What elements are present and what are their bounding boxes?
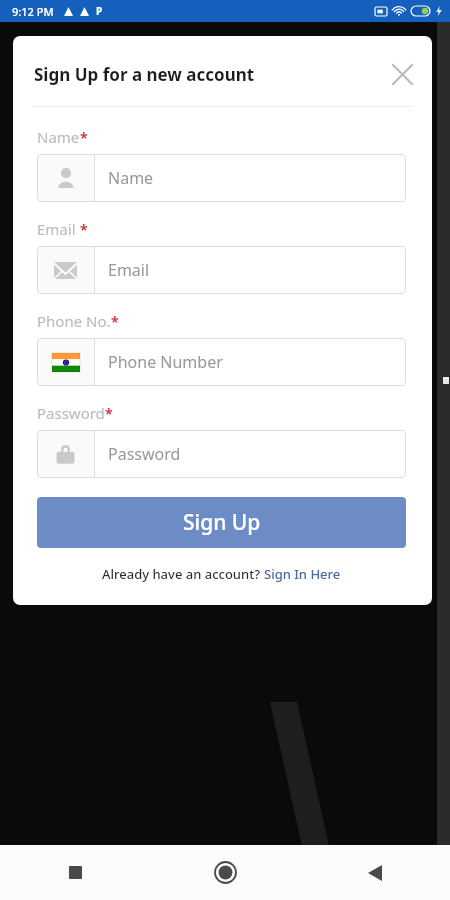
staticText: Phone No. <box>37 311 111 331</box>
staticText: Name <box>108 167 154 189</box>
button[interactable]: Password <box>37 430 406 478</box>
staticText: Email <box>37 219 76 239</box>
staticText: Sign Up <box>183 508 261 537</box>
button[interactable]: Home <box>150 845 300 900</box>
button[interactable]: Back <box>300 845 450 900</box>
button[interactable]: Close <box>386 58 418 90</box>
staticText: 9:12 PM <box>12 4 54 19</box>
staticText: P <box>96 4 103 18</box>
staticText: * <box>105 404 113 423</box>
button[interactable]: Email <box>37 246 406 294</box>
staticText: Password <box>108 443 181 465</box>
staticText: Sign In Here <box>264 565 341 583</box>
staticText: * <box>80 128 88 147</box>
button[interactable]: Sign Up <box>37 497 406 548</box>
staticText: Name <box>37 127 80 147</box>
button[interactable]: Sign In Here <box>264 565 341 583</box>
button[interactable]: Phone Number <box>37 338 406 386</box>
staticText: Password <box>37 403 105 423</box>
staticText: * <box>80 220 88 239</box>
staticText: * <box>111 312 119 331</box>
button[interactable]: Name <box>37 154 406 202</box>
staticText: Sign Up for a new account <box>34 63 386 86</box>
staticText: Already have an account? <box>102 565 264 583</box>
button[interactable]: Recent apps <box>0 845 150 900</box>
staticText: Phone Number <box>108 351 223 373</box>
staticText: Email <box>108 259 150 281</box>
